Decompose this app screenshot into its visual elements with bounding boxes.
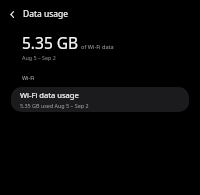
button[interactable]: Back <box>4 6 20 22</box>
button[interactable]: Wi-Fi data usage <box>11 87 189 112</box>
staticText: 5.35 GB <box>22 32 79 53</box>
staticText: Data usage <box>23 8 69 20</box>
staticText: Wi-Fi data usage <box>20 90 79 100</box>
staticText: 5.35 GB used Aug 5 – Sep 2 <box>20 102 89 109</box>
staticText: Aug 5 – Sep 2 <box>22 54 56 61</box>
staticText: of Wi-Fi data <box>81 43 114 51</box>
staticText: Wi-Fi <box>22 74 35 81</box>
